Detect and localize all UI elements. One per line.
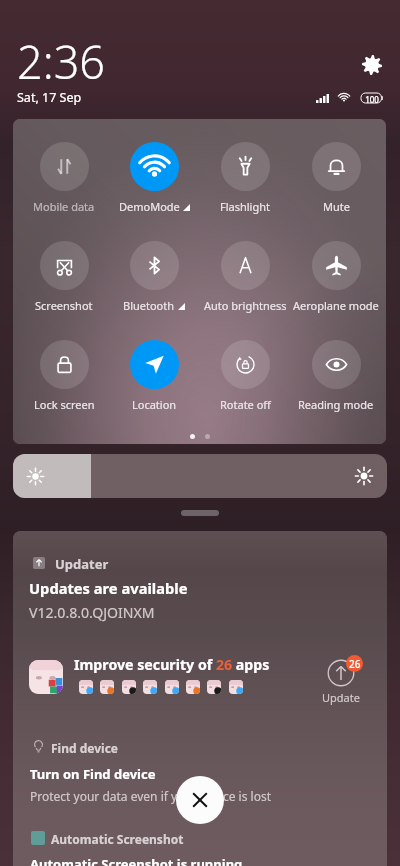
button[interactable]: Mute [291, 142, 381, 215]
staticText: Updates are available [29, 578, 188, 598]
staticText: Lock screen [34, 397, 95, 412]
button[interactable]: Screenshot [19, 241, 109, 314]
button[interactable]: Lock screen [19, 340, 109, 413]
staticText: Rotate off [220, 397, 271, 412]
button[interactable]: Aeroplane mode [291, 241, 381, 314]
staticText: Update [318, 690, 364, 705]
button[interactable]: Mobile data [19, 142, 109, 215]
staticText: 2:36 [17, 31, 106, 92]
button[interactable]: Close [176, 776, 224, 824]
staticText: Mute [323, 199, 350, 214]
button[interactable] [13, 531, 387, 716]
staticText: Sat, 17 Sep [17, 89, 82, 106]
staticText: Aeroplane mode [293, 298, 379, 313]
staticText: Mobile data [33, 199, 95, 214]
staticText: Turn on Find device [30, 765, 156, 783]
staticText: Flashlight [220, 199, 270, 214]
button[interactable] [13, 723, 387, 815]
staticText: V12.0.8.0.QJOINXM [29, 603, 155, 622]
staticText: Automatic Screenshot is running [30, 855, 243, 866]
button[interactable]: Rotate off [200, 340, 290, 413]
staticText: 100 [361, 94, 383, 104]
staticText: Auto brightness [204, 298, 287, 313]
button[interactable]: Bluetooth [109, 241, 199, 314]
button[interactable]: Settings [359, 52, 385, 78]
staticText: Reading mode [298, 397, 374, 412]
button[interactable]: Auto brightness [200, 241, 290, 314]
button[interactable]: Update [318, 652, 364, 704]
staticText: Automatic Screenshot [51, 831, 184, 847]
staticText: Bluetooth [123, 298, 175, 313]
button[interactable]: DemoMode [109, 142, 199, 215]
staticText: Protect your data even if your device is… [30, 788, 272, 804]
staticText: Updater [55, 555, 109, 573]
button[interactable]: Location [109, 340, 199, 413]
staticText: DemoMode [119, 199, 180, 214]
staticText: Location [132, 397, 177, 412]
button[interactable]: Flashlight [200, 142, 290, 215]
button[interactable]: Brightness [13, 454, 387, 498]
button[interactable]: Reading mode [291, 340, 381, 413]
staticText: Screenshot [35, 298, 93, 313]
button[interactable] [13, 820, 387, 866]
staticText: Improve security of 26 apps [74, 655, 270, 674]
staticText: 26 [349, 657, 361, 671]
staticText: Find device [51, 740, 118, 756]
